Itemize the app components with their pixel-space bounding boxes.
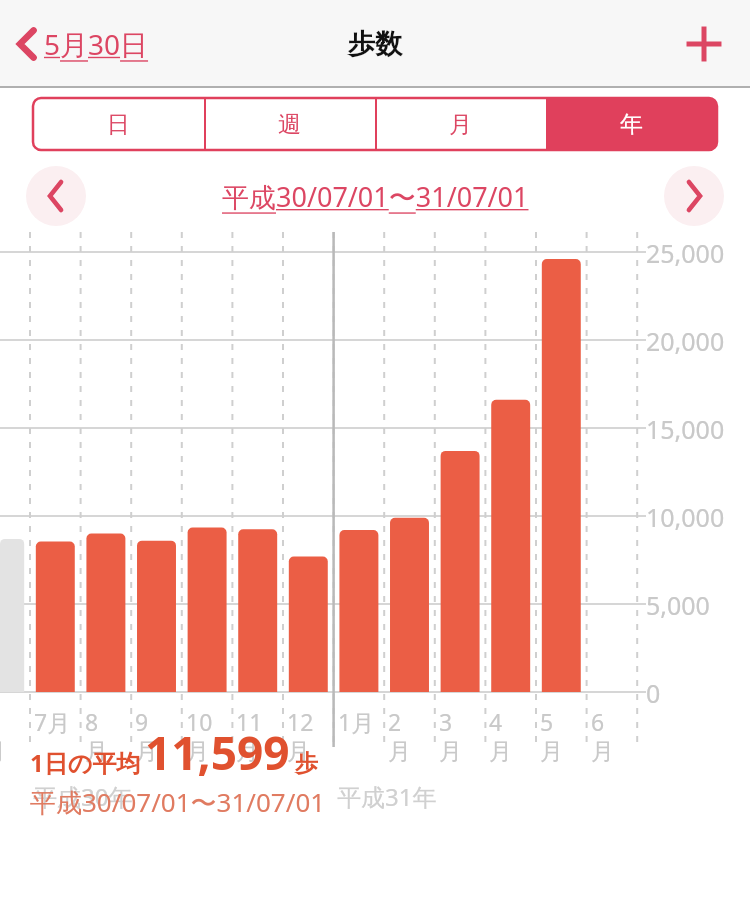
staticText: 平成31年 <box>337 780 437 813</box>
staticText: 11 <box>236 706 263 737</box>
staticText: 2 <box>388 706 402 737</box>
staticText: 月 <box>540 737 563 766</box>
staticText: 5月30日 <box>44 25 149 63</box>
staticText: 7月 <box>34 706 71 737</box>
staticText: 歩数 <box>348 27 402 61</box>
staticText: 週 <box>278 110 301 139</box>
staticText: 10 <box>186 706 213 737</box>
staticText: 12 <box>287 706 314 737</box>
staticText: 歩 <box>295 749 318 778</box>
staticText: 平成30/07/01〜31/07/01 <box>30 784 326 820</box>
staticText: 月 <box>591 737 614 766</box>
staticText: 月 <box>287 737 310 766</box>
staticText: 平成30年 <box>33 780 133 813</box>
staticText: 月 <box>489 737 512 766</box>
staticText: 8 <box>85 706 99 737</box>
button[interactable]: 年 <box>546 98 717 150</box>
staticText: 月 <box>85 737 108 766</box>
button[interactable]: 週 <box>204 98 375 150</box>
staticText: 年 <box>620 110 643 139</box>
staticText: 20,000 <box>646 324 725 358</box>
staticText: 10,000 <box>646 500 725 534</box>
staticText: 日 <box>107 110 130 139</box>
staticText: 月 <box>135 737 158 766</box>
staticText: 月 <box>236 737 259 766</box>
staticText: 4 <box>489 706 503 737</box>
button[interactable]: 月 <box>375 98 546 150</box>
button[interactable]: Previous <box>26 166 86 226</box>
staticText: 9 <box>135 706 149 737</box>
staticText: 月 <box>388 737 411 766</box>
staticText: 0 <box>646 676 661 710</box>
button[interactable]: Add <box>676 16 732 72</box>
button[interactable]: 日 <box>33 98 204 150</box>
staticText: 月 <box>0 737 6 766</box>
staticText: 月 <box>449 110 472 139</box>
staticText: 5 <box>540 706 554 737</box>
staticText: 3 <box>439 706 453 737</box>
staticText: 月 <box>439 737 462 766</box>
staticText: 11,599 <box>145 721 290 784</box>
staticText: 1日の平均 <box>30 746 141 779</box>
button[interactable]: 平成30/07/01〜31/07/01 <box>222 178 529 215</box>
button[interactable]: Next <box>664 166 724 226</box>
staticText: 月 <box>186 737 209 766</box>
staticText: 平成30/07/01〜31/07/01 <box>222 178 529 215</box>
staticText: 1月 <box>338 706 375 737</box>
staticText: 25,000 <box>646 236 725 270</box>
staticText: 5,000 <box>646 588 710 622</box>
staticText: 6 <box>591 706 605 737</box>
button[interactable]: 5月30日 <box>10 19 155 69</box>
staticText: 15,000 <box>646 412 725 446</box>
